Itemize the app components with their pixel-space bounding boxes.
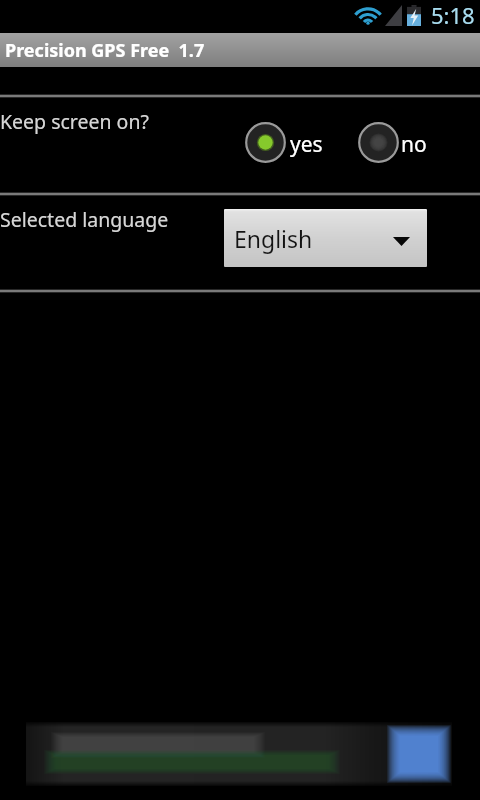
- button[interactable]: Advertisement: [26, 722, 452, 786]
- staticText: Precision GPS Free 1.7: [5, 38, 205, 63]
- staticText: yes: [290, 130, 323, 159]
- staticText: English: [234, 223, 313, 254]
- button[interactable]: English: [224, 209, 427, 267]
- staticText: Keep screen on?: [0, 108, 149, 135]
- staticText: 5:18: [431, 0, 475, 30]
- button[interactable]: yes: [244, 121, 323, 164]
- staticText: no: [401, 130, 427, 159]
- button[interactable]: no: [357, 121, 427, 164]
- staticText: Selected language: [0, 206, 169, 233]
